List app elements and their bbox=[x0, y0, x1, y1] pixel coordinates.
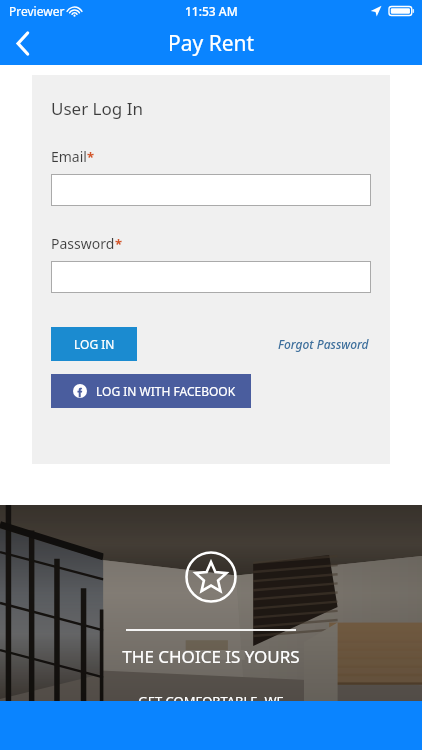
staticText: LOG IN WITH FACEBOOK bbox=[96, 383, 236, 399]
staticText: * bbox=[115, 235, 123, 253]
button[interactable]: LOG IN WITH FACEBOOK bbox=[51, 374, 251, 408]
staticText: GET COMFORTABLE. WE bbox=[138, 692, 284, 701]
button[interactable]: Back bbox=[0, 22, 46, 65]
button[interactable] bbox=[51, 174, 371, 206]
staticText: 11:53 AM bbox=[185, 3, 238, 19]
button[interactable] bbox=[51, 261, 371, 293]
staticText: Email bbox=[51, 147, 87, 166]
staticText: Pay Rent bbox=[168, 29, 255, 58]
staticText: User Log In bbox=[51, 97, 143, 120]
staticText: Previewer bbox=[9, 3, 65, 19]
button[interactable]: Forgot Password bbox=[276, 332, 371, 356]
staticText: Password bbox=[51, 234, 115, 253]
button[interactable]: LOG IN bbox=[51, 327, 137, 361]
staticText: Forgot Password bbox=[278, 336, 369, 352]
staticText: THE CHOICE IS YOURS bbox=[122, 645, 300, 668]
staticText: * bbox=[87, 148, 95, 166]
staticText: LOG IN bbox=[74, 336, 115, 352]
